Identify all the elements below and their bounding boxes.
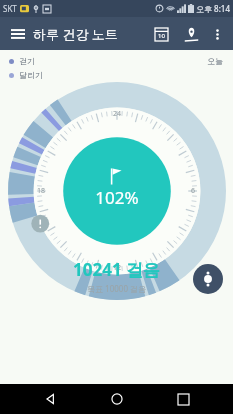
staticText: 걷기: [19, 56, 35, 66]
staticText: 18: [37, 186, 46, 196]
button[interactable]: More options: [205, 22, 229, 46]
staticText: 달리기: [19, 70, 43, 80]
staticText: 하루 건강 노트: [33, 25, 118, 43]
staticText: SKT: [3, 3, 17, 14]
staticText: 6: [191, 186, 196, 196]
staticText: 102%: [95, 186, 139, 209]
staticText: 10241 걸음: [73, 258, 161, 281]
staticText: 12: [113, 263, 122, 273]
button[interactable]: Location: [178, 21, 204, 47]
staticText: 10: [158, 32, 165, 40]
staticText: 오늘: [207, 56, 223, 66]
button[interactable]: Add entry: [193, 264, 223, 294]
staticText: 24: [113, 109, 122, 119]
button[interactable]: Menu: [6, 22, 30, 46]
button[interactable]: Recents: [166, 384, 200, 414]
staticText: 목표 10000 걸음: [87, 283, 147, 294]
button[interactable]: Calendar: [148, 21, 174, 47]
staticText: 오후 8:14: [196, 3, 230, 14]
button[interactable]: Back: [33, 384, 67, 414]
button[interactable]: Home: [100, 384, 134, 414]
